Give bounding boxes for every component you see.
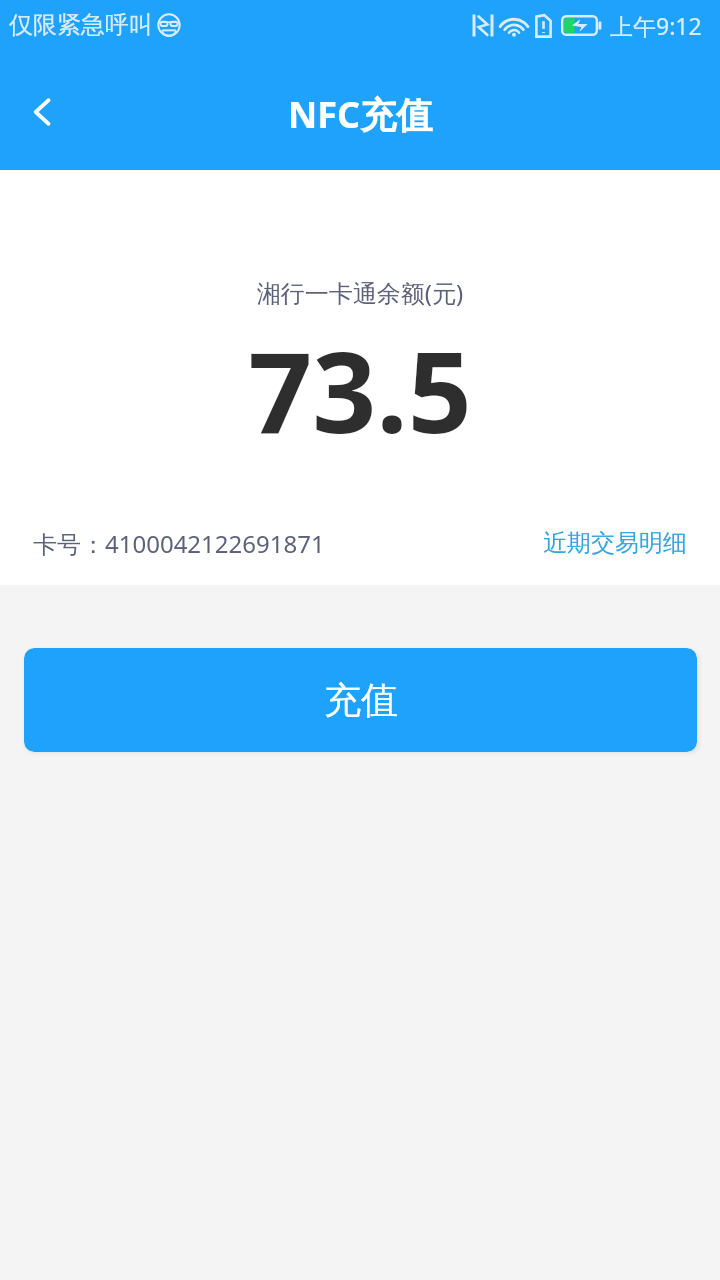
button[interactable]: 近期交易明细	[543, 520, 687, 566]
staticText: 上午9:12	[610, 10, 702, 41]
button[interactable]: Back	[0, 68, 84, 152]
staticText: 卡号：4100042122691871	[33, 527, 325, 560]
staticText: 湘行一卡通余额(元)	[0, 276, 720, 309]
staticText: 近期交易明细	[543, 528, 687, 558]
staticText: 充值	[324, 677, 398, 724]
staticText: 仅限紧急呼叫	[9, 10, 153, 40]
button[interactable]: 充值	[24, 648, 697, 752]
staticText: 73.5	[0, 313, 720, 466]
staticText: NFC充值	[288, 90, 433, 139]
